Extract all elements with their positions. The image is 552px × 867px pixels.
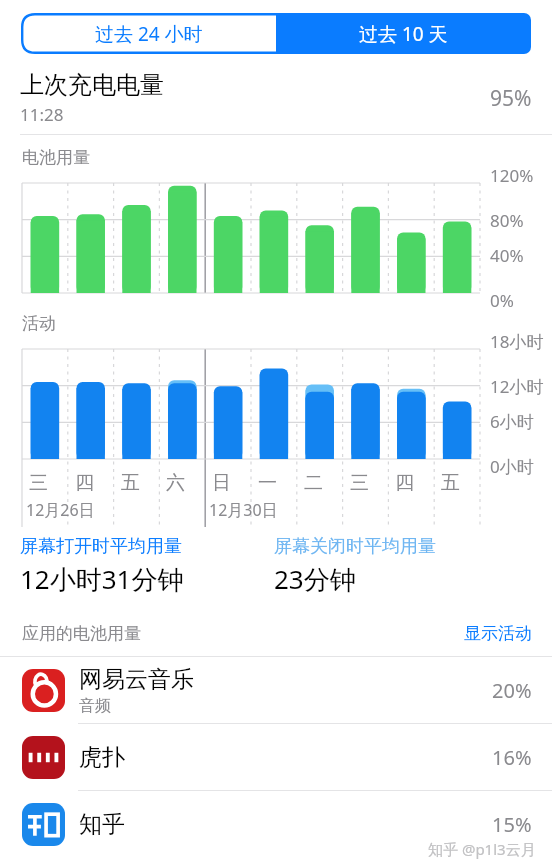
staticText: 23分钟 <box>274 561 356 597</box>
staticText: 四 <box>75 471 94 495</box>
staticText: 12小时31分钟 <box>20 561 184 597</box>
staticText: 12小时 <box>490 375 544 398</box>
staticText: 过去 24 小时 <box>95 21 203 47</box>
staticText: 显示活动 <box>464 623 532 644</box>
staticText: 四 <box>395 471 414 495</box>
staticText: 18小时 <box>490 330 544 353</box>
staticText: 16% <box>492 744 532 771</box>
staticText: 12月26日 <box>26 499 95 521</box>
staticText: 日 <box>212 471 231 495</box>
other: 网易云音乐 <box>22 669 65 712</box>
staticText: 虎扑 <box>79 743 125 772</box>
staticText: 80% <box>490 209 524 232</box>
staticText: 上次充电电量 <box>20 70 164 100</box>
staticText: 0小时 <box>490 455 534 478</box>
staticText: 11:28 <box>20 103 64 126</box>
button[interactable]: 显示活动 <box>464 623 532 644</box>
staticText: 屏幕打开时平均用量 <box>20 535 182 558</box>
staticText: 活动 <box>22 313 56 334</box>
staticText: 六 <box>166 471 185 495</box>
staticText: 过去 10 天 <box>359 21 448 47</box>
staticText: 知乎 <box>79 810 125 839</box>
staticText: 12月30日 <box>209 499 278 521</box>
other: 知乎 <box>22 803 65 846</box>
other: 虎扑 <box>22 736 65 779</box>
staticText: 屏幕关闭时平均用量 <box>274 535 436 558</box>
staticText: 95% <box>490 84 532 113</box>
staticText: 0% <box>490 289 514 312</box>
button[interactable]: 知乎 <box>0 791 552 857</box>
staticText: 电池用量 <box>22 147 90 168</box>
button[interactable]: 过去 10 天 <box>276 13 531 54</box>
staticText: 网易云音乐 <box>79 665 194 694</box>
staticText: 五 <box>441 471 460 495</box>
staticText: 音频 <box>79 696 111 716</box>
staticText: 一 <box>258 471 277 495</box>
staticText: 15% <box>492 811 532 838</box>
staticText: 五 <box>121 471 140 495</box>
staticText: 120% <box>490 164 534 187</box>
staticText: 三 <box>350 471 369 495</box>
staticText: 6小时 <box>490 410 534 433</box>
button[interactable]: 网易云音乐 <box>0 657 552 723</box>
staticText: 知乎 @p1l3云月 <box>428 839 536 859</box>
staticText: 40% <box>490 244 524 267</box>
button[interactable]: 过去 24 小时 <box>21 13 276 54</box>
staticText: 二 <box>304 471 323 495</box>
staticText: 应用的电池用量 <box>22 623 464 644</box>
staticText: 20% <box>492 677 532 704</box>
staticText: 三 <box>29 471 48 495</box>
button[interactable]: 虎扑 <box>0 724 552 790</box>
